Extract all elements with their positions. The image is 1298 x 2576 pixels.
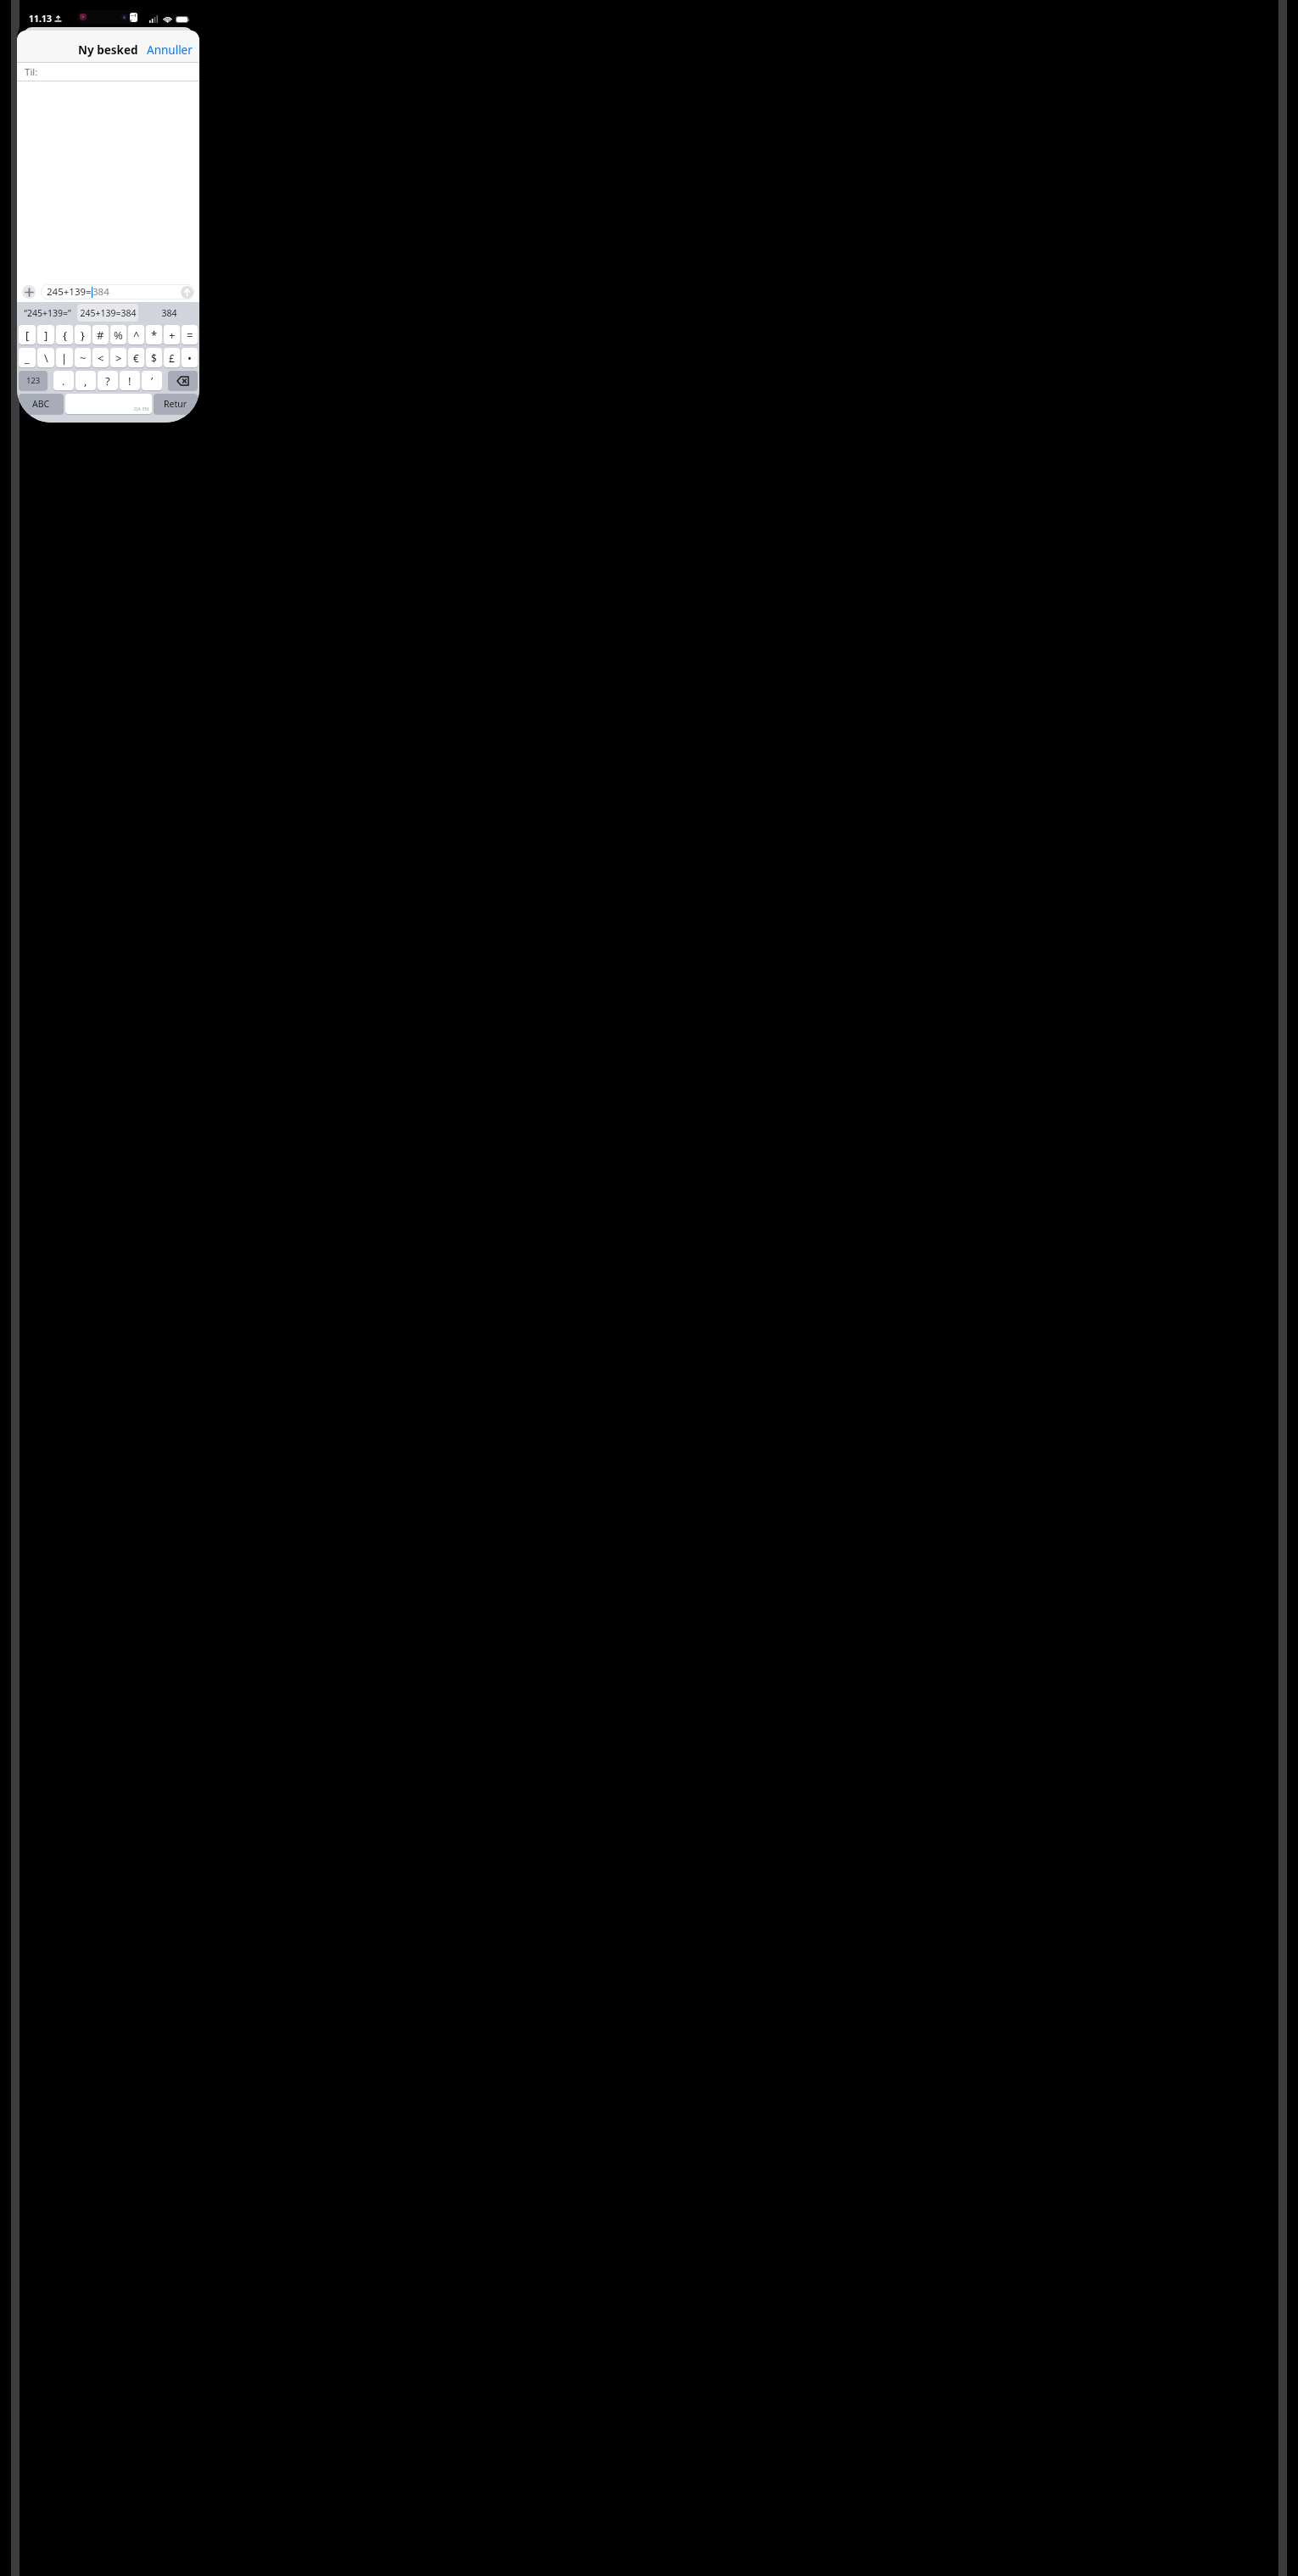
button[interactable]: # — [92, 325, 109, 344]
button[interactable]: + — [164, 325, 180, 344]
button[interactable]: * — [146, 325, 162, 344]
staticText: < — [98, 350, 104, 366]
staticText: } — [81, 328, 85, 343]
button[interactable]: = — [182, 325, 198, 344]
button[interactable]: • — [182, 348, 198, 367]
staticText: . — [62, 373, 65, 389]
button[interactable]: [ — [19, 325, 36, 344]
staticText: £ — [169, 351, 175, 365]
staticText: 245+139= — [47, 285, 92, 299]
staticText: 384 — [92, 285, 109, 299]
button[interactable]: ~ — [75, 348, 91, 367]
staticText: | — [61, 350, 68, 366]
button[interactable]: < — [92, 348, 109, 367]
button[interactable]: Retur — [154, 394, 198, 414]
button[interactable]: ABC — [19, 394, 64, 414]
button[interactable]: _ — [19, 348, 36, 367]
staticText: , — [84, 373, 87, 389]
staticText: ~ — [80, 350, 87, 366]
staticText: ABC — [32, 398, 50, 410]
button[interactable]: . — [53, 371, 74, 390]
button[interactable]: Send — [181, 286, 193, 299]
button[interactable]: Til: — [17, 63, 199, 81]
button[interactable]: { — [56, 325, 73, 344]
staticText: [ — [25, 328, 30, 343]
button[interactable]: £ — [164, 348, 180, 367]
button[interactable]: ? — [98, 371, 118, 390]
button[interactable]: , — [76, 371, 96, 390]
staticText: ! — [128, 373, 131, 389]
button[interactable]: 123 — [19, 371, 48, 390]
staticText: Ny besked — [78, 42, 138, 58]
staticText: 11.13 — [29, 13, 52, 25]
staticText: # — [97, 328, 104, 343]
staticText: = — [187, 328, 193, 343]
staticText: • — [187, 350, 192, 366]
staticText: € — [133, 351, 139, 365]
button[interactable]: ! — [120, 371, 140, 390]
button[interactable]: Emoji — [26, 418, 43, 423]
staticText: + — [169, 328, 176, 343]
staticText: ^ — [133, 328, 140, 343]
button[interactable]: | — [56, 348, 73, 367]
button[interactable]: Dictate — [173, 418, 190, 423]
button[interactable]: } — [75, 325, 91, 344]
staticText: Retur — [164, 398, 187, 410]
staticText: ] — [44, 328, 48, 343]
button[interactable]: 245+139=384 — [77, 304, 138, 322]
staticText: “245+139=” — [24, 307, 71, 319]
staticText: Til: — [25, 65, 38, 79]
staticText: 245+139=384 — [80, 307, 137, 319]
button[interactable]: ] — [37, 325, 54, 344]
staticText: tv — [130, 13, 137, 22]
staticText: ’ — [151, 373, 154, 389]
button[interactable]: ’ — [142, 371, 162, 390]
staticText: $ — [151, 351, 157, 365]
staticText: Annuller — [147, 42, 193, 58]
button[interactable]: Add attachment — [22, 285, 36, 299]
staticText: 123 — [26, 375, 41, 386]
button[interactable]: $ — [146, 348, 162, 367]
button[interactable]: Annuller — [140, 39, 199, 61]
staticText: ? — [105, 373, 110, 389]
staticText: \ — [44, 350, 48, 366]
staticText: DA EN — [134, 406, 149, 412]
staticText: _ — [25, 350, 30, 366]
staticText: % — [114, 328, 123, 343]
staticText: > — [115, 350, 122, 366]
staticText: 384 — [161, 307, 177, 319]
button[interactable]: DA EN — [65, 394, 152, 414]
staticText: * — [151, 328, 158, 343]
staticText: { — [63, 328, 67, 343]
button[interactable]: % — [110, 325, 126, 344]
button[interactable]: 384 — [138, 302, 199, 323]
button[interactable]: Backspace — [168, 371, 198, 390]
button[interactable]: ^ — [128, 325, 144, 344]
button[interactable]: € — [128, 348, 144, 367]
button[interactable]: > — [110, 348, 126, 367]
button[interactable]: “245+139=” — [17, 302, 77, 323]
button[interactable]: \ — [37, 348, 54, 367]
button[interactable]: 245+139= — [41, 284, 194, 300]
